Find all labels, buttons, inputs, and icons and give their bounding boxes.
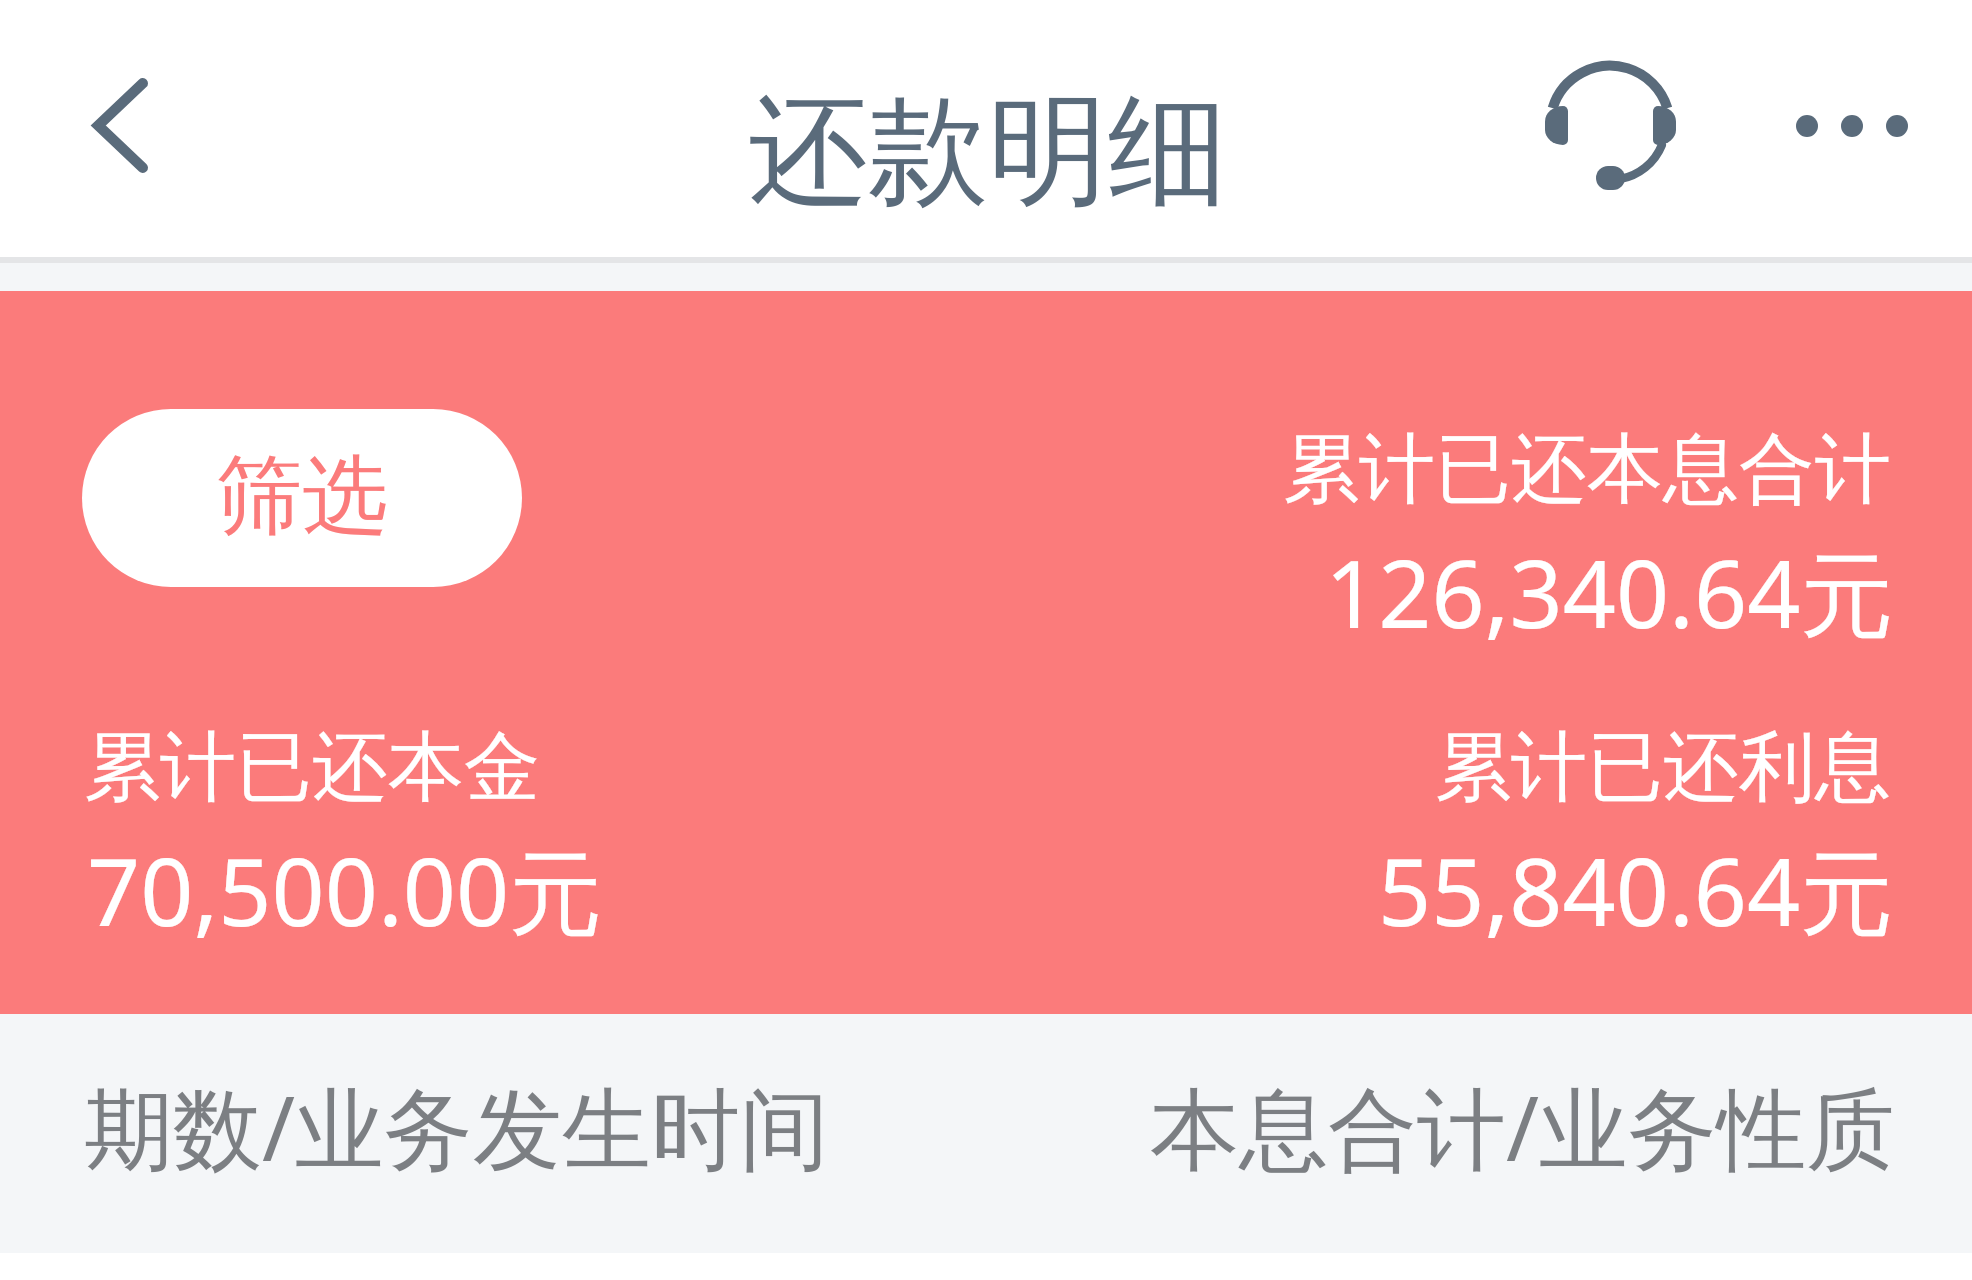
button[interactable]: 筛选 [82, 409, 522, 587]
staticText: 累计已还本息合计 [1283, 422, 1891, 518]
button[interactable]: More options [1772, 46, 1932, 206]
button[interactable]: Back [50, 63, 191, 187]
staticText: 126,340.64元 [1325, 529, 1894, 656]
staticText: 累计已还利息 [1435, 720, 1891, 816]
button[interactable]: Customer service [1530, 46, 1690, 206]
staticText: 期数/业务发生时间 [84, 1066, 830, 1188]
staticText: 还款明细 [748, 76, 1228, 227]
staticText: 55,840.64元 [1378, 827, 1894, 954]
staticText: 本息合计/业务性质 [1150, 1066, 1896, 1188]
staticText: 筛选 [216, 442, 388, 550]
staticText: 累计已还本金 [84, 720, 540, 816]
staticText: 70,500.00元 [87, 827, 603, 954]
